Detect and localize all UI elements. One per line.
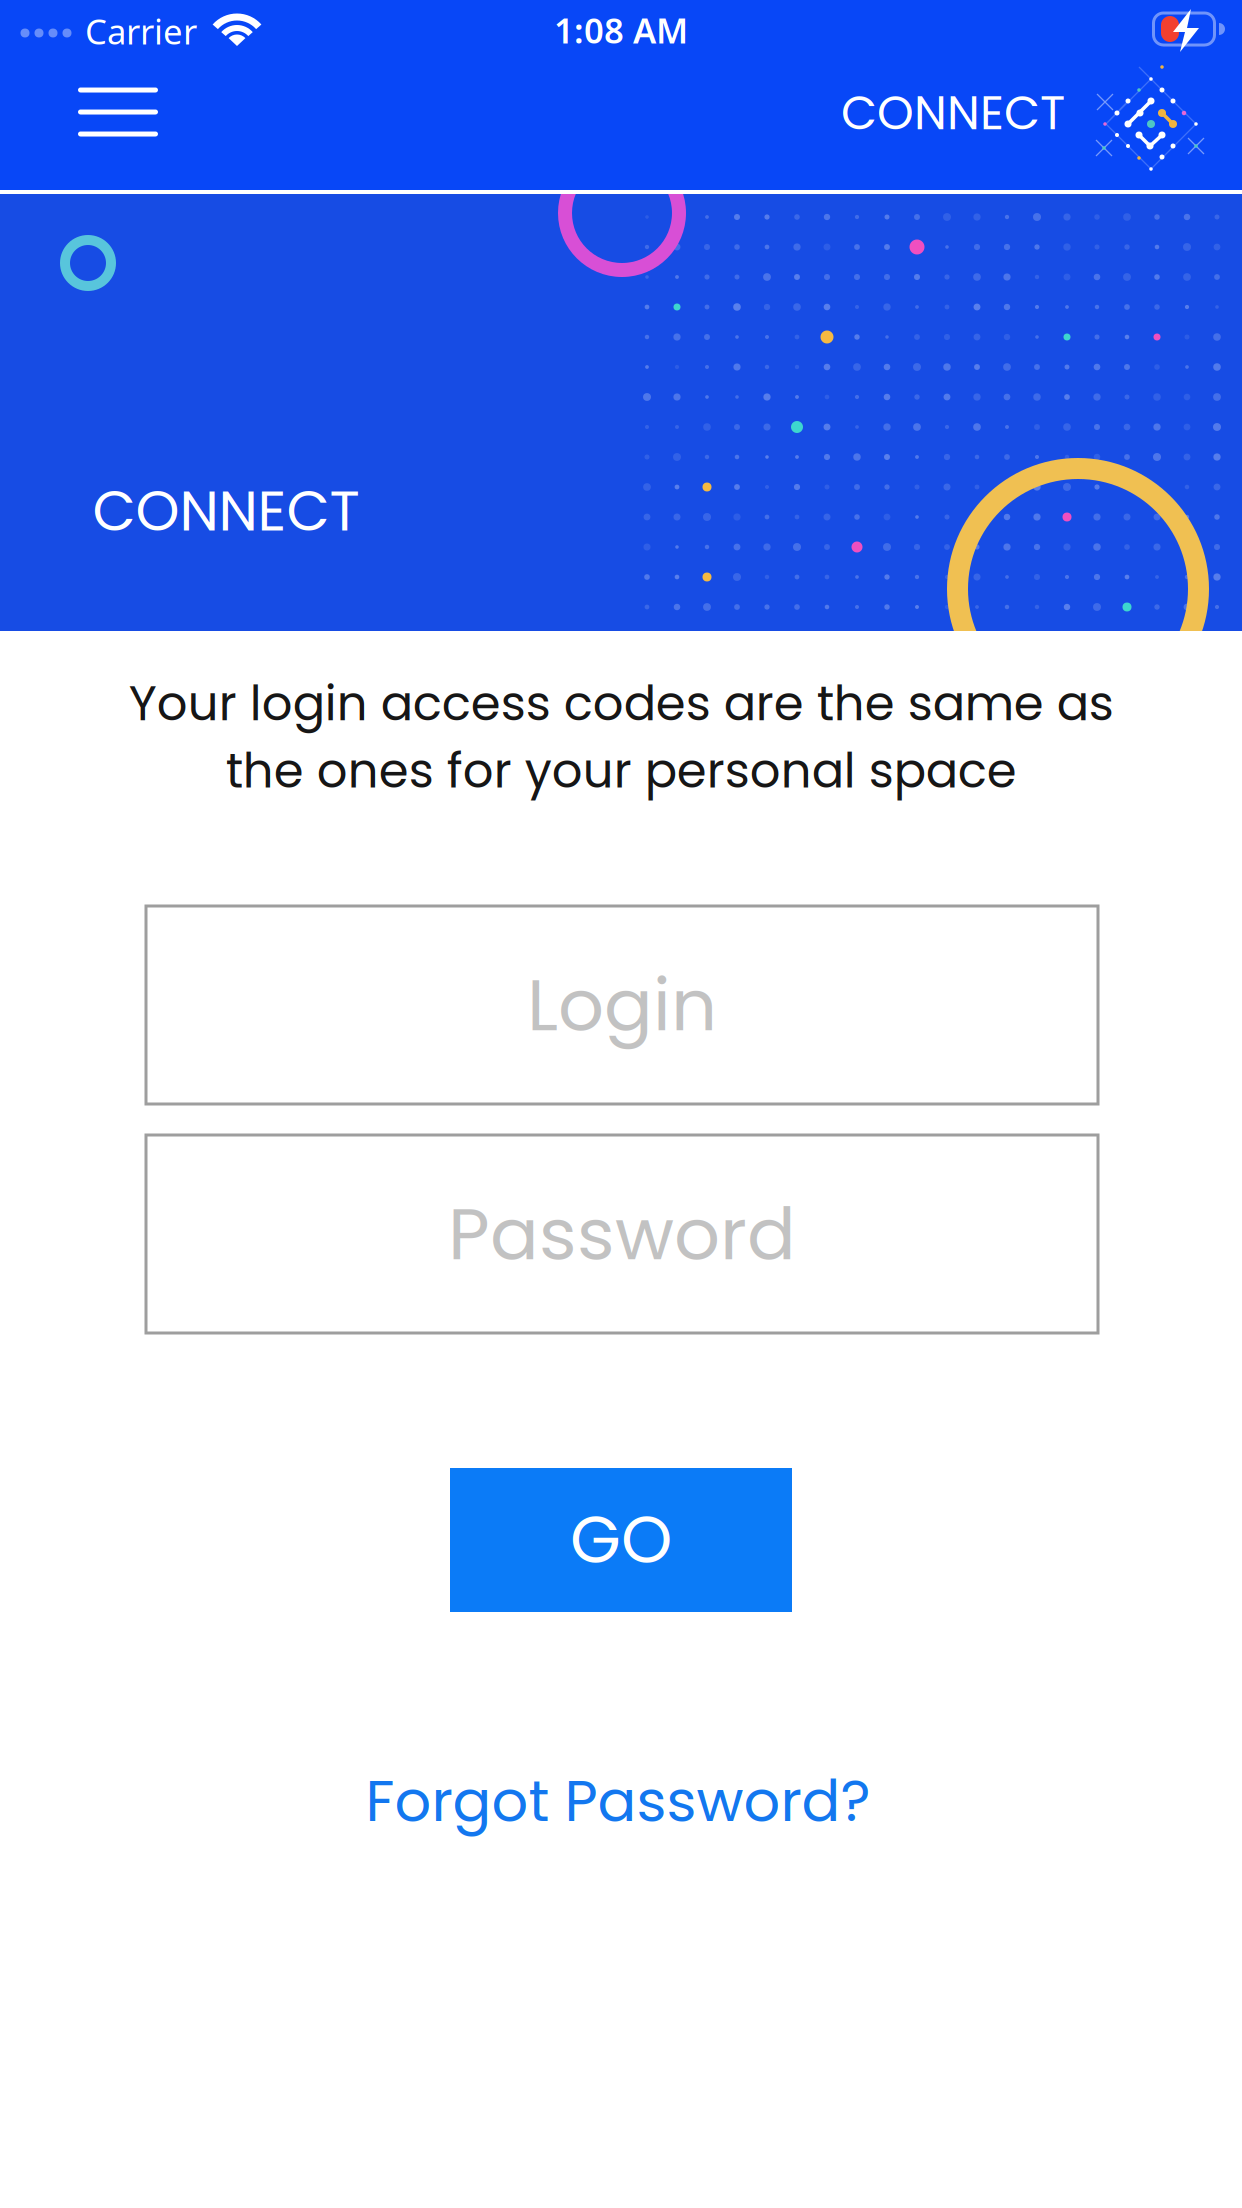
button[interactable]: GO — [450, 1468, 792, 1612]
staticText: CONNECT — [92, 472, 359, 550]
staticText: 1:08 AM — [554, 7, 688, 53]
staticText: Password — [448, 1184, 796, 1284]
button[interactable]: Menu — [63, 72, 173, 152]
staticText: Login — [527, 955, 717, 1055]
button[interactable]: Password — [144, 1133, 1099, 1334]
staticText: GO — [570, 1494, 672, 1586]
staticText: Your login access codes are the same as … — [128, 670, 1113, 804]
button[interactable]: Forgot Password? — [365, 1761, 870, 1841]
staticText: Carrier — [85, 8, 197, 54]
staticText: Forgot Password? — [365, 1761, 870, 1841]
staticText: CONNECT — [841, 80, 1065, 146]
button[interactable]: Login — [144, 904, 1099, 1105]
